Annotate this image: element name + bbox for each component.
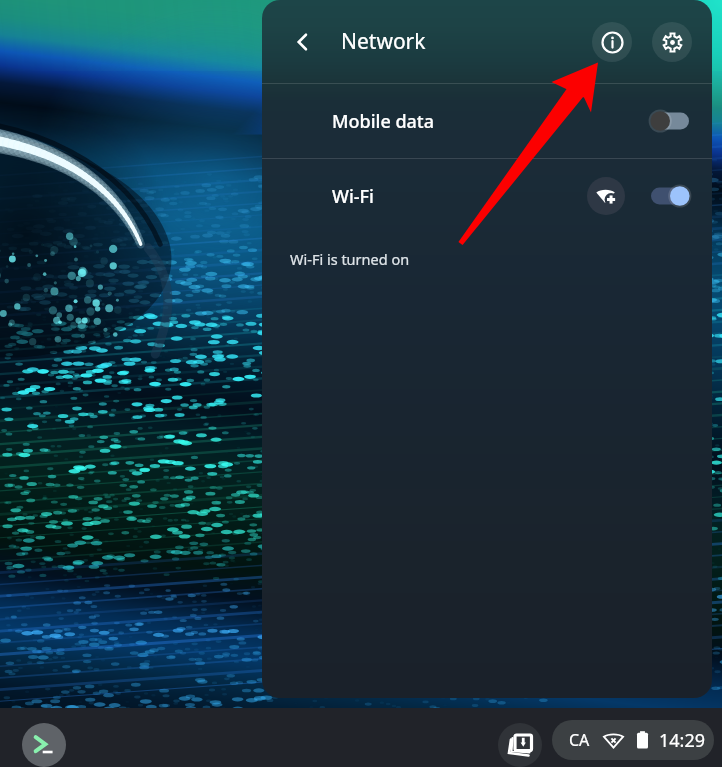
button[interactable]: Screen capture (498, 723, 542, 767)
staticText: Wi-Fi is turned on (290, 249, 410, 269)
button[interactable]: Add Wi-Fi network (587, 177, 625, 215)
button[interactable]: CA (552, 720, 714, 760)
button[interactable]: Back (282, 22, 322, 62)
button[interactable]: Wi-Fi on (651, 184, 689, 208)
staticText: Wi-Fi (332, 184, 374, 209)
staticText: Network (341, 27, 426, 56)
staticText: Mobile data (332, 109, 435, 134)
staticText: CA (569, 729, 590, 751)
button[interactable]: Info (592, 22, 632, 62)
button[interactable]: Terminal (22, 723, 66, 767)
button[interactable]: Mobile data (262, 84, 712, 158)
button[interactable]: Settings (652, 22, 692, 62)
button[interactable]: Mobile data off (651, 109, 689, 133)
button[interactable]: Wi-Fi (262, 159, 712, 233)
staticText: 14:29 (659, 728, 706, 753)
